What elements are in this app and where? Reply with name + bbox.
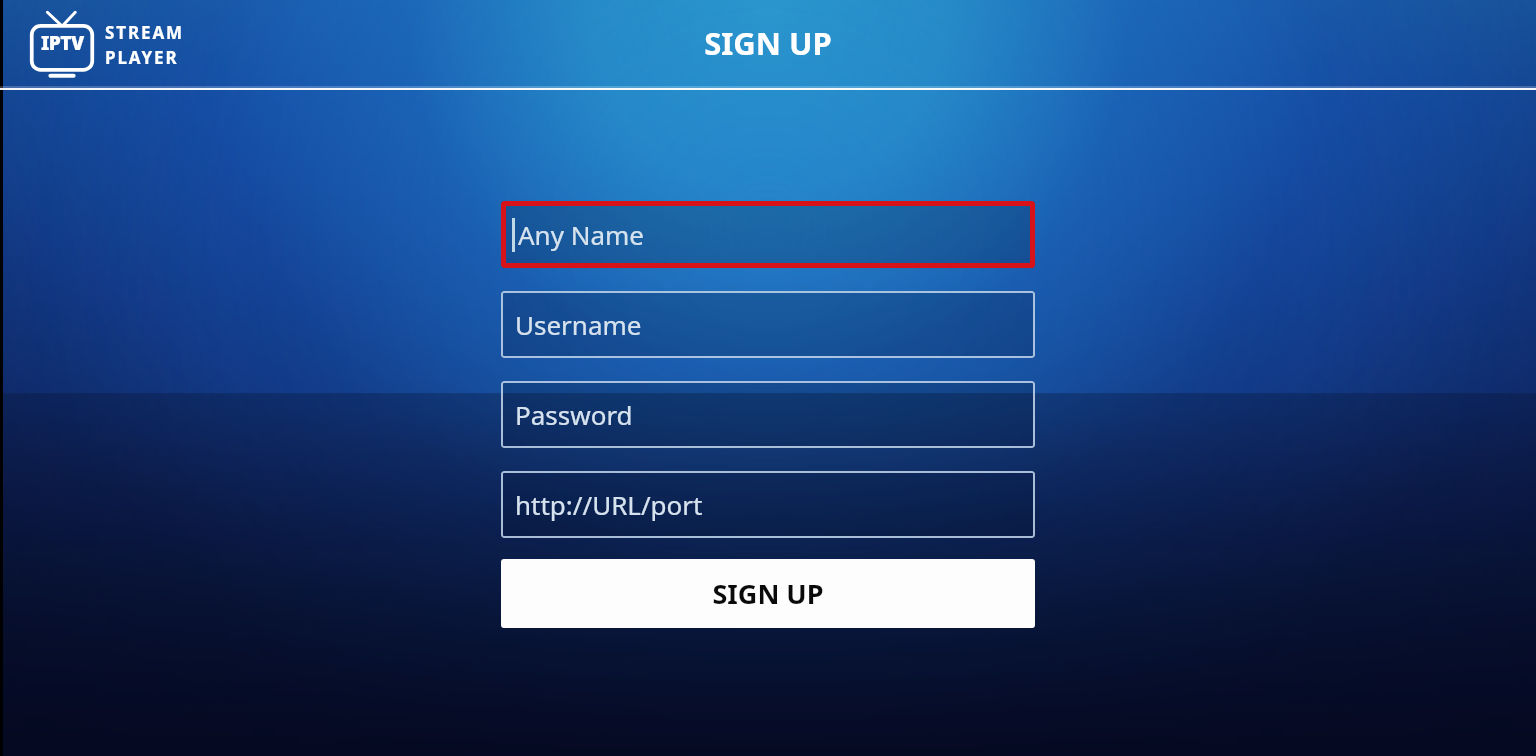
button[interactable]: Password (501, 381, 1035, 448)
staticText: IPTV (41, 30, 84, 56)
staticText: SIGN UP (712, 575, 824, 612)
staticText: http://URL/port (515, 487, 703, 522)
staticText: STREAM (105, 21, 185, 44)
staticText: SIGN UP (704, 22, 832, 64)
staticText: PLAYER (105, 46, 179, 69)
button[interactable]: IPTV Stream Player (28, 9, 185, 81)
staticText: Password (515, 397, 633, 432)
button[interactable]: http://URL/port (501, 471, 1035, 538)
staticText: Username (515, 307, 642, 342)
button[interactable]: Any Name (501, 201, 1035, 268)
staticText: Any Name (518, 217, 645, 252)
button[interactable]: Username (501, 291, 1035, 358)
button[interactable]: SIGN UP (501, 559, 1035, 628)
